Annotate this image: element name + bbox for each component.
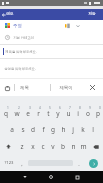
button[interactable]: 3: [22, 104, 33, 121]
button[interactable]: 주영: [0, 20, 103, 31]
staticText: 1: [7, 106, 9, 110]
button[interactable]: Clipboard: [2, 83, 12, 93]
button[interactable]: h: [58, 121, 68, 138]
staticText: l: [92, 125, 94, 134]
button[interactable]: 기본 카테고리: [0, 31, 103, 44]
staticText: r: [37, 109, 40, 118]
button[interactable]: Expand: [75, 23, 80, 28]
button[interactable]: j: [68, 121, 78, 138]
button[interactable]: ?123: [0, 155, 17, 171]
button[interactable]: v: [48, 138, 58, 155]
staticText: i: [77, 109, 79, 118]
button[interactable]: Enter: [84, 155, 103, 171]
staticText: n: [71, 142, 76, 151]
staticText: 메모: [6, 12, 14, 17]
staticText: p: [96, 109, 100, 118]
staticText: 7: [69, 106, 71, 110]
staticText: 설명을 입력해주세요.: [4, 66, 36, 71]
button[interactable]: 저장: [85, 9, 99, 20]
button[interactable]: x: [27, 138, 38, 155]
button[interactable]: 5: [43, 104, 53, 121]
button[interactable]: 7: [63, 104, 73, 121]
staticText: t: [47, 109, 50, 118]
button[interactable]: 4: [33, 104, 43, 121]
staticText: 제목: [20, 85, 29, 91]
staticText: o: [86, 109, 90, 118]
staticText: x: [31, 142, 35, 151]
staticText: 제목을 입력해주세요.: [5, 49, 37, 54]
staticText: ?123: [4, 160, 14, 166]
button[interactable]: z: [16, 138, 27, 155]
staticText: d: [31, 125, 35, 134]
staticText: 5: [49, 106, 51, 110]
button[interactable]: 9: [83, 104, 93, 121]
staticText: ,: [21, 160, 23, 167]
button[interactable]: c: [38, 138, 48, 155]
button[interactable]: 2: [11, 104, 22, 121]
staticText: c: [41, 142, 45, 151]
staticText: 4: [39, 106, 41, 110]
button[interactable]: l: [88, 121, 98, 138]
button[interactable]: 제목이: [51, 79, 86, 96]
staticText: z: [20, 142, 24, 151]
button[interactable]: s: [17, 121, 28, 138]
button[interactable]: n: [68, 138, 78, 155]
staticText: .: [78, 160, 80, 167]
staticText: 8: [79, 106, 81, 110]
staticText: 2: [18, 106, 20, 110]
button[interactable]: 제목을 입력해주세요.: [0, 45, 103, 58]
button[interactable]: Back: [20, 172, 30, 182]
button[interactable]: Back: [0, 9, 7, 20]
staticText: q: [4, 109, 8, 118]
staticText: a: [10, 125, 14, 134]
button[interactable]: Comma: [17, 155, 27, 171]
button[interactable]: 설명을 입력해주세요.: [0, 59, 103, 78]
button[interactable]: b: [58, 138, 68, 155]
button[interactable]: 8: [73, 104, 83, 121]
button[interactable]: 제목: [15, 79, 50, 96]
button[interactable]: 0: [93, 104, 103, 121]
button[interactable]: f: [38, 121, 48, 138]
staticText: 9: [89, 106, 91, 110]
staticText: 제목이: [59, 85, 73, 91]
staticText: w: [14, 109, 20, 118]
staticText: u: [66, 109, 71, 118]
button[interactable]: k: [78, 121, 88, 138]
button[interactable]: Close suggestions: [86, 79, 99, 96]
staticText: 저장: [88, 12, 96, 17]
staticText: 기본 카테고리: [13, 35, 34, 40]
staticText: j: [72, 125, 74, 134]
button[interactable]: d: [28, 121, 38, 138]
button[interactable]: Backspace: [88, 138, 103, 155]
button[interactable]: g: [48, 121, 58, 138]
button[interactable]: 1: [0, 104, 11, 121]
staticText: m: [80, 142, 87, 151]
staticText: h: [61, 125, 66, 134]
staticText: g: [51, 125, 55, 134]
staticText: f: [42, 125, 45, 134]
staticText: 0: [99, 106, 101, 110]
staticText: y: [56, 109, 60, 118]
staticText: b: [61, 142, 65, 151]
button[interactable]: Recents: [72, 172, 82, 182]
staticText: 주영: [13, 23, 22, 29]
staticText: e: [26, 109, 30, 118]
staticText: v: [51, 142, 55, 151]
staticText: 6: [59, 106, 61, 110]
staticText: 3: [29, 106, 31, 110]
staticText: k: [81, 125, 85, 134]
staticText: s: [21, 125, 25, 134]
button[interactable]: Shift: [0, 138, 16, 155]
button[interactable]: a: [6, 121, 17, 138]
button[interactable]: 6: [53, 104, 63, 121]
button[interactable]: m: [78, 138, 88, 155]
button[interactable]: Home: [46, 172, 56, 182]
